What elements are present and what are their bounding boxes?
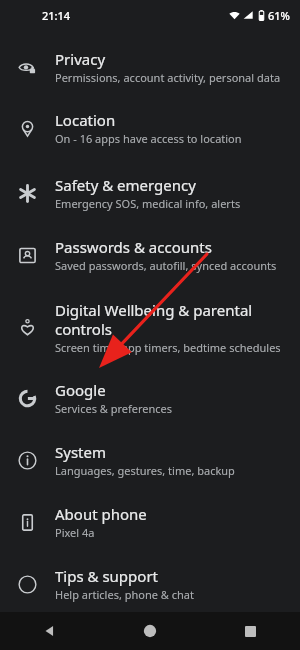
- staticText: Pixel 4a: [55, 525, 95, 540]
- button[interactable]: Location: [0, 105, 300, 151]
- button[interactable]: Passwords & accounts: [0, 232, 300, 278]
- button[interactable]: Google: [0, 375, 300, 421]
- staticText: Permissions, account activity, personal …: [55, 70, 281, 85]
- button[interactable]: Recent apps: [200, 612, 300, 650]
- staticText: Services & preferences: [55, 401, 173, 416]
- button[interactable]: Digital Wellbeing & parental controls: [0, 294, 300, 360]
- staticText: Passwords & accounts: [55, 237, 212, 257]
- staticText: Location: [55, 110, 116, 130]
- staticText: Languages, gestures, time, backup: [55, 463, 235, 478]
- button[interactable]: Safety & emergency: [0, 170, 300, 216]
- staticText: 21:14: [42, 8, 71, 23]
- button[interactable]: System: [0, 437, 300, 483]
- staticText: Safety & emergency: [55, 175, 196, 195]
- staticText: About phone: [55, 504, 147, 524]
- button[interactable]: About phone: [0, 499, 300, 545]
- staticText: Screen time, app timers, bedtime schedul…: [55, 340, 281, 355]
- staticText: Emergency SOS, medical info, alerts: [55, 196, 241, 211]
- staticText: Privacy: [55, 49, 106, 69]
- button[interactable]: Tips & support: [0, 561, 300, 607]
- staticText: Help articles, phone & chat: [55, 587, 194, 602]
- staticText: Digital Wellbeing & parental controls: [55, 300, 286, 339]
- staticText: 61%: [268, 8, 290, 23]
- button[interactable]: Back: [0, 612, 100, 650]
- staticText: Saved passwords, autofill, synced accoun…: [55, 258, 277, 273]
- button[interactable]: Home: [100, 612, 200, 650]
- staticText: System: [55, 442, 106, 462]
- staticText: On - 16 apps have access to location: [55, 131, 242, 146]
- button[interactable]: Privacy: [0, 44, 300, 90]
- staticText: Tips & support: [55, 566, 158, 586]
- staticText: Google: [55, 380, 106, 400]
